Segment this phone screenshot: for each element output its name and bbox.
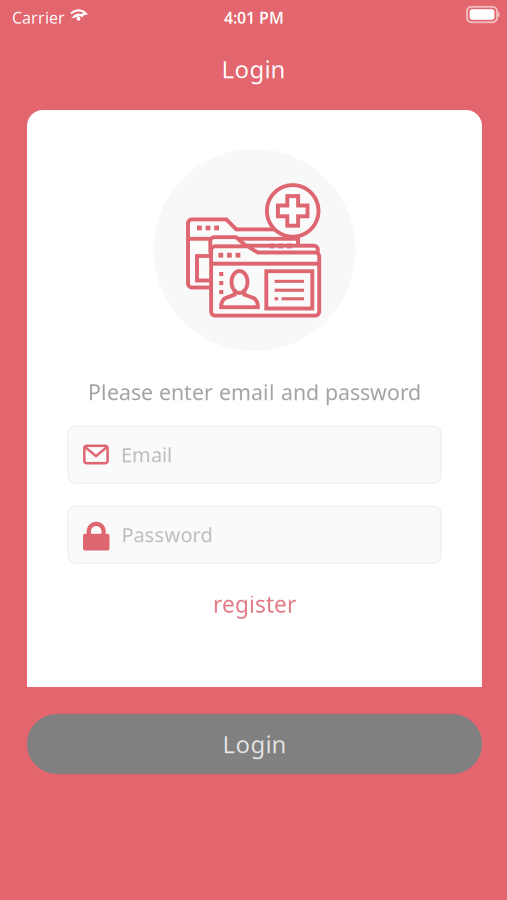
button[interactable]: Login [27, 714, 482, 774]
staticText: Login [221, 53, 285, 85]
staticText: Email [121, 441, 172, 468]
staticText: Carrier [12, 7, 65, 28]
staticText: 4:01 PM [224, 7, 284, 28]
staticText: Password [121, 521, 212, 548]
staticText: register [213, 589, 296, 619]
staticText: Login [222, 728, 286, 760]
button[interactable]: register [184, 582, 324, 626]
staticText: Please enter email and password [88, 378, 421, 406]
